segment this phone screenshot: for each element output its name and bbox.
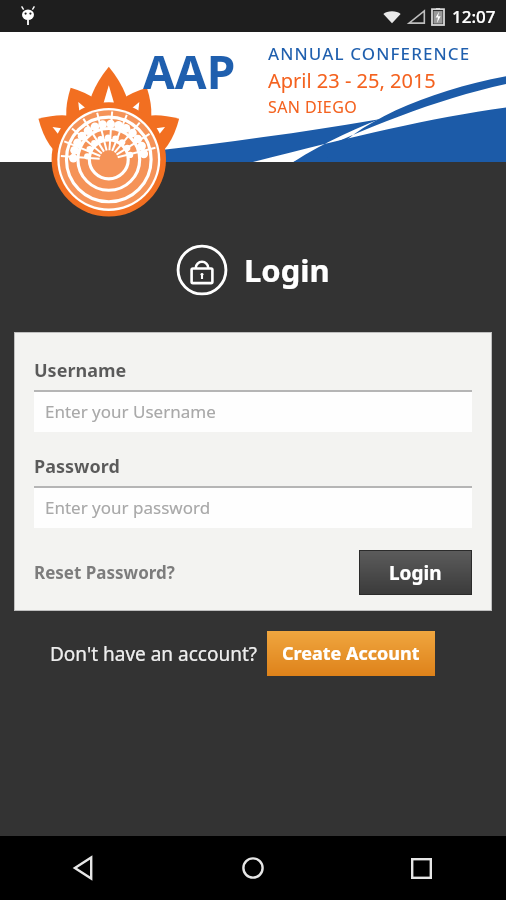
button[interactable]: Enter your password <box>34 487 472 528</box>
staticText: April 23 - 25, 2015 <box>268 67 436 94</box>
staticText: Enter your Username <box>45 400 216 423</box>
button[interactable]: Reset Password? <box>34 555 175 590</box>
staticText: Reset Password? <box>34 561 175 584</box>
staticText: SAN DIEGO <box>268 96 358 118</box>
button[interactable]: Back <box>0 836 168 900</box>
staticText: Login <box>244 249 330 291</box>
button[interactable]: Create Account <box>267 631 435 676</box>
staticText: Password <box>34 454 120 479</box>
staticText: Don't have an account? <box>50 641 258 667</box>
staticText: Username <box>34 358 127 383</box>
button[interactable]: Home <box>168 836 337 900</box>
staticText: AAP <box>143 40 236 103</box>
button[interactable]: Login <box>359 550 472 595</box>
button[interactable]: Recent apps <box>337 836 506 900</box>
staticText: 12:07 <box>452 5 496 28</box>
staticText: ANNUAL CONFERENCE <box>268 42 471 65</box>
staticText: Enter your password <box>45 496 211 519</box>
staticText: Login <box>389 560 442 586</box>
staticText: Create Account <box>282 641 420 666</box>
button[interactable]: Enter your Username <box>34 391 472 432</box>
